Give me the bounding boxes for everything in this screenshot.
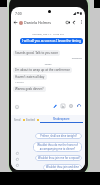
staticText: Shakespeare xyxy=(53,117,70,121)
button[interactable]: Haven't eaten all day xyxy=(13,74,47,80)
staticText: Haven't eaten all day xyxy=(15,75,45,79)
button[interactable]: Gallery xyxy=(59,102,67,110)
staticText: 7:00 xyxy=(15,11,22,16)
staticText: Wouldst thou do me the honor of accompan… xyxy=(35,143,80,151)
button[interactable]: Magic compose xyxy=(51,102,59,110)
staticText: Today xyxy=(13,62,83,65)
button[interactable]: Comment xyxy=(15,157,19,161)
staticText: Wanna grab dinner? xyxy=(15,87,44,91)
button[interactable]: Wouldst thou do me the honor of accompan… xyxy=(33,142,82,152)
button[interactable]: Stickers xyxy=(67,102,75,110)
button[interactable]: More options xyxy=(78,19,84,25)
button[interactable]: Call xyxy=(71,19,78,26)
staticText: Delivered xyxy=(13,57,82,60)
button[interactable]: Prithee, shall we dine tonight? xyxy=(35,133,82,139)
button[interactable]: Shakespeare xyxy=(37,117,83,123)
button[interactable]: Wouldst thou join me for a repast? xyxy=(35,155,82,161)
staticText: I will call you as soon as I know the ti… xyxy=(22,39,81,43)
button[interactable]: Video call xyxy=(64,19,71,26)
button[interactable]: Like xyxy=(15,151,19,155)
button[interactable]: Daniela Holmes xyxy=(18,20,64,25)
button[interactable]: Wouldst thou join and dine with me tonig… xyxy=(43,164,82,170)
button[interactable]: Excited xyxy=(23,118,35,122)
button[interactable]: Wanna grab dinner? xyxy=(13,86,46,92)
button[interactable]: I will call you as soon as I know the ti… xyxy=(20,38,83,44)
staticText: I'm about to wrap up at the conference xyxy=(15,68,70,72)
staticText: Sounds good. Talk to you soon xyxy=(15,51,58,55)
staticText: Send xyxy=(14,118,21,122)
staticText: Excited xyxy=(26,118,35,122)
staticText: Daniela Holmes xyxy=(24,20,51,25)
staticText: Wouldst thou join and dine with me tonig… xyxy=(45,165,80,170)
staticText: 1:04 PM xyxy=(15,81,24,84)
staticText: Monday, Feb 17 · 12:48 PM xyxy=(13,32,83,35)
button[interactable]: Voice message xyxy=(75,102,83,110)
button[interactable]: Profile xyxy=(15,163,19,167)
button[interactable]: I'm about to wrap up at the conference xyxy=(13,67,72,73)
button[interactable]: Emoji xyxy=(13,103,20,110)
button[interactable]: Sounds good. Talk to you soon xyxy=(13,50,60,56)
staticText: Wouldst thou join me for a repast? xyxy=(38,156,80,160)
button[interactable]: Back xyxy=(12,19,18,25)
staticText: Prithee, shall we dine tonight? xyxy=(40,134,77,138)
